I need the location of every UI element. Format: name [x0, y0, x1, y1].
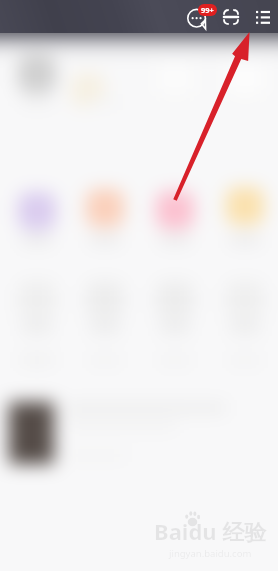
- staticText: jingyan.baidu.com: [169, 547, 252, 560]
- staticText: Baidu 经验: [154, 516, 267, 546]
- staticText: 99+: [201, 5, 214, 15]
- button[interactable]: Scan: [217, 3, 245, 31]
- button[interactable]: Messages: [183, 2, 213, 32]
- button[interactable]: Menu: [249, 3, 277, 31]
